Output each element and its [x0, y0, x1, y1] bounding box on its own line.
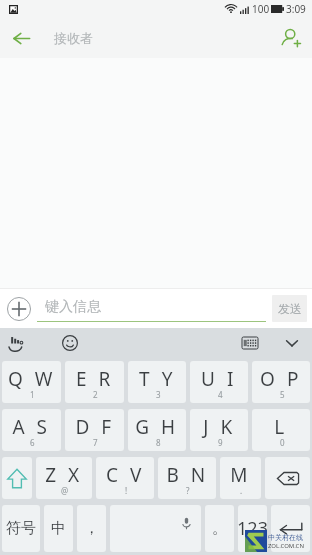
button[interactable]: Backspace: [265, 457, 310, 499]
button[interactable]: Z X: [36, 457, 92, 499]
staticText: 接收者: [54, 30, 93, 46]
staticText: 中关村在线: [268, 533, 303, 542]
button[interactable]: ，: [77, 505, 106, 552]
button[interactable]: C V: [96, 457, 154, 499]
button[interactable]: Back: [0, 18, 42, 58]
staticText: 键入信息: [45, 298, 101, 316]
button[interactable]: Q W: [2, 361, 61, 403]
staticText: 9: [218, 437, 223, 448]
staticText: L: [274, 414, 288, 440]
button[interactable]: B N: [158, 457, 216, 499]
staticText: J K: [203, 414, 236, 440]
staticText: E R: [76, 366, 114, 392]
staticText: 0: [280, 437, 285, 448]
staticText: 发送: [278, 301, 302, 316]
button[interactable]: 。: [205, 505, 234, 552]
staticText: A S: [12, 414, 51, 440]
button[interactable]: Attach: [0, 289, 37, 328]
staticText: B N: [166, 462, 209, 488]
button[interactable]: Hide keyboard: [274, 328, 310, 358]
staticText: O P: [260, 366, 302, 392]
staticText: 1: [30, 389, 35, 400]
button[interactable]: U I: [190, 361, 248, 403]
staticText: 123: [238, 516, 267, 541]
button[interactable]: Space / voice input: [110, 505, 201, 552]
staticText: T Y: [139, 366, 176, 392]
staticText: M: [230, 462, 251, 488]
button[interactable]: L: [252, 409, 310, 451]
button[interactable]: Enter: [271, 505, 310, 552]
button[interactable]: Switch keyboard layout: [232, 328, 268, 358]
button[interactable]: T Y: [128, 361, 186, 403]
button[interactable]: A S: [2, 409, 61, 451]
staticText: !: [125, 485, 128, 496]
staticText: 3: [156, 389, 161, 400]
staticText: @: [61, 485, 69, 496]
staticText: 7: [93, 437, 98, 448]
button[interactable]: G H: [128, 409, 186, 451]
button[interactable]: 123: [238, 505, 267, 552]
staticText: Q W: [8, 366, 56, 392]
staticText: 5: [280, 389, 285, 400]
staticText: U I: [201, 366, 237, 392]
button[interactable]: O P: [252, 361, 310, 403]
button[interactable]: Shift: [2, 457, 32, 499]
staticText: D F: [75, 414, 115, 440]
staticText: Z X: [45, 462, 83, 488]
staticText: 4: [218, 389, 223, 400]
staticText: C V: [106, 462, 145, 488]
staticText: 符号: [6, 519, 36, 538]
button[interactable]: E R: [65, 361, 124, 403]
staticText: .: [240, 485, 243, 496]
button[interactable]: Emoji: [54, 328, 86, 358]
button[interactable]: 中: [44, 505, 73, 552]
button[interactable]: D F: [65, 409, 124, 451]
staticText: G H: [135, 414, 179, 440]
staticText: 3:09: [286, 2, 306, 16]
staticText: 。: [212, 519, 227, 538]
staticText: ZOL.COM.CN: [268, 542, 304, 550]
button[interactable]: Handwriting input: [0, 328, 32, 358]
button[interactable]: 发送: [272, 295, 307, 322]
staticText: ，: [84, 519, 99, 538]
staticText: 6: [30, 437, 35, 448]
staticText: 中: [51, 519, 66, 538]
staticText: 8: [156, 437, 161, 448]
staticText: 100: [252, 2, 270, 16]
button[interactable]: M: [220, 457, 261, 499]
button[interactable]: Add recipient: [270, 18, 312, 58]
staticText: ?: [186, 485, 190, 496]
button[interactable]: 符号: [2, 505, 40, 552]
button[interactable]: J K: [190, 409, 248, 451]
staticText: 2: [93, 389, 98, 400]
